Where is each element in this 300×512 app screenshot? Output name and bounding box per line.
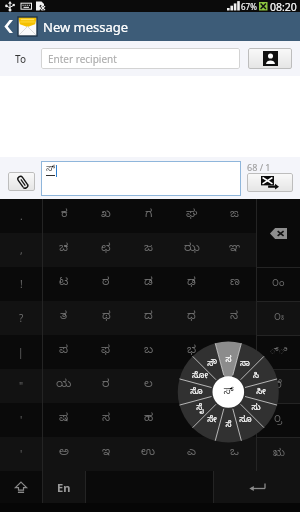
button[interactable]: ಛ [85, 233, 127, 267]
button[interactable]: ಖ [85, 199, 127, 233]
button[interactable]: ಳ [170, 403, 213, 437]
button[interactable]: Enter recipient [41, 48, 240, 69]
button[interactable]: ನ [213, 301, 256, 335]
button[interactable]: ಋ [257, 438, 300, 471]
button[interactable]: ಸಾ [230, 357, 260, 371]
button[interactable]: ಠ [85, 267, 127, 301]
button[interactable]: ಪ [43, 335, 85, 369]
button[interactable]: ್‌ಿ [257, 336, 300, 369]
button[interactable]: ಸೂ [230, 413, 260, 427]
button[interactable]: ಸ [85, 403, 127, 437]
button[interactable]: ರ [85, 369, 127, 403]
button[interactable]: ಚ [43, 233, 85, 267]
button[interactable]: | [0, 335, 42, 369]
button[interactable]: ಸೌ [197, 357, 227, 371]
button[interactable]: ಅ [43, 437, 85, 471]
button[interactable]: ! [0, 267, 42, 301]
button[interactable]: ಹ [127, 403, 170, 437]
button[interactable]: ಭ [170, 335, 213, 369]
button[interactable]: ೦ಂ [257, 268, 300, 301]
staticText: ಘ [186, 208, 198, 224]
button[interactable]: ಥ [85, 301, 127, 335]
staticText: ಜ [144, 242, 153, 258]
button[interactable]: ೦್ರ [257, 404, 300, 437]
staticText: ಋ [273, 448, 285, 461]
button[interactable]: ಮ [213, 335, 256, 369]
button[interactable]: ದ [127, 301, 170, 335]
button[interactable]: ತ [43, 301, 85, 335]
button[interactable]: ಶ [213, 369, 256, 403]
staticText: ಇ [102, 446, 111, 462]
staticText: ಸೌ [207, 359, 217, 370]
staticText: ಙ [230, 208, 239, 224]
staticText: ಸಾ [240, 359, 250, 370]
button[interactable]: ಷ [43, 403, 85, 437]
button[interactable]: ಸೋ [185, 369, 215, 383]
button[interactable]: ಫ [85, 335, 127, 369]
button[interactable]: ಕ್ಷ [213, 403, 256, 437]
button[interactable]: ಙ [213, 199, 256, 233]
button[interactable]: To [0, 41, 41, 76]
staticText: ಟ [59, 276, 69, 292]
staticText: ! [20, 277, 23, 291]
staticText: ೦ಂ [272, 278, 285, 291]
button[interactable]: ಬ [127, 335, 170, 369]
button[interactable]: ಝ [170, 233, 213, 267]
staticText: ಅ [59, 446, 69, 462]
button[interactable]: ಣ [213, 267, 256, 301]
staticText: ಥ [102, 310, 111, 326]
button[interactable]: ಎ [170, 437, 213, 471]
button[interactable]: ಟ [43, 267, 85, 301]
button[interactable]: ಗ [127, 199, 170, 233]
button[interactable]: ಒ [213, 437, 256, 471]
staticText: ಗ [145, 208, 153, 224]
staticText: ಸ [225, 355, 232, 366]
button[interactable]: Enter [214, 471, 300, 503]
staticText: ' [20, 413, 23, 427]
button[interactable]: Send [247, 173, 293, 192]
button[interactable]: ಸೊ [181, 385, 211, 399]
button[interactable]: ಸು [241, 401, 271, 415]
button[interactable]: ಘ [170, 199, 213, 233]
button[interactable]: " [0, 369, 42, 403]
button[interactable]: ಉ [127, 437, 170, 471]
staticText: ಸೈ [196, 403, 204, 414]
button[interactable]: ಞ [213, 233, 256, 267]
button[interactable]: Add contact [248, 48, 292, 69]
staticText: ದ [144, 310, 153, 326]
button[interactable]: ಧ [170, 301, 213, 335]
button[interactable]: ಲ [127, 369, 170, 403]
button[interactable]: ಯ [43, 369, 85, 403]
button[interactable]: ಇ [85, 437, 127, 471]
button[interactable]: ಸ್ [41, 161, 241, 196]
button[interactable]: ಡ [127, 267, 170, 301]
button[interactable]: Backspace [257, 199, 300, 267]
button[interactable]: ಢ [170, 267, 213, 301]
staticText: ನ [230, 310, 239, 326]
button[interactable]: ಜ [127, 233, 170, 267]
button[interactable]: ಸೈ [185, 401, 215, 415]
button[interactable]: ? [0, 301, 42, 335]
button[interactable]: Attach [8, 172, 35, 191]
button[interactable]: Back [0, 12, 16, 41]
button[interactable]: ಸ್ [213, 385, 243, 399]
button[interactable]: ೦ೆ [257, 370, 300, 403]
staticText: ಲ [144, 378, 153, 394]
button[interactable]: ಸೀ [246, 385, 276, 399]
button[interactable]: ವ [170, 369, 213, 403]
button[interactable]: ಸ [213, 353, 243, 367]
button[interactable]: ಸೇ [197, 413, 227, 427]
button[interactable]: ಸೆ [213, 418, 243, 432]
button[interactable]: ಸಿ [241, 369, 271, 383]
staticText: ಸ [102, 412, 111, 428]
button[interactable]: En [43, 471, 85, 503]
staticText: . [20, 209, 23, 223]
button[interactable]: ಕ [43, 199, 85, 233]
button[interactable]: Shift [0, 471, 42, 503]
button[interactable]: ೦ಃ [257, 302, 300, 335]
